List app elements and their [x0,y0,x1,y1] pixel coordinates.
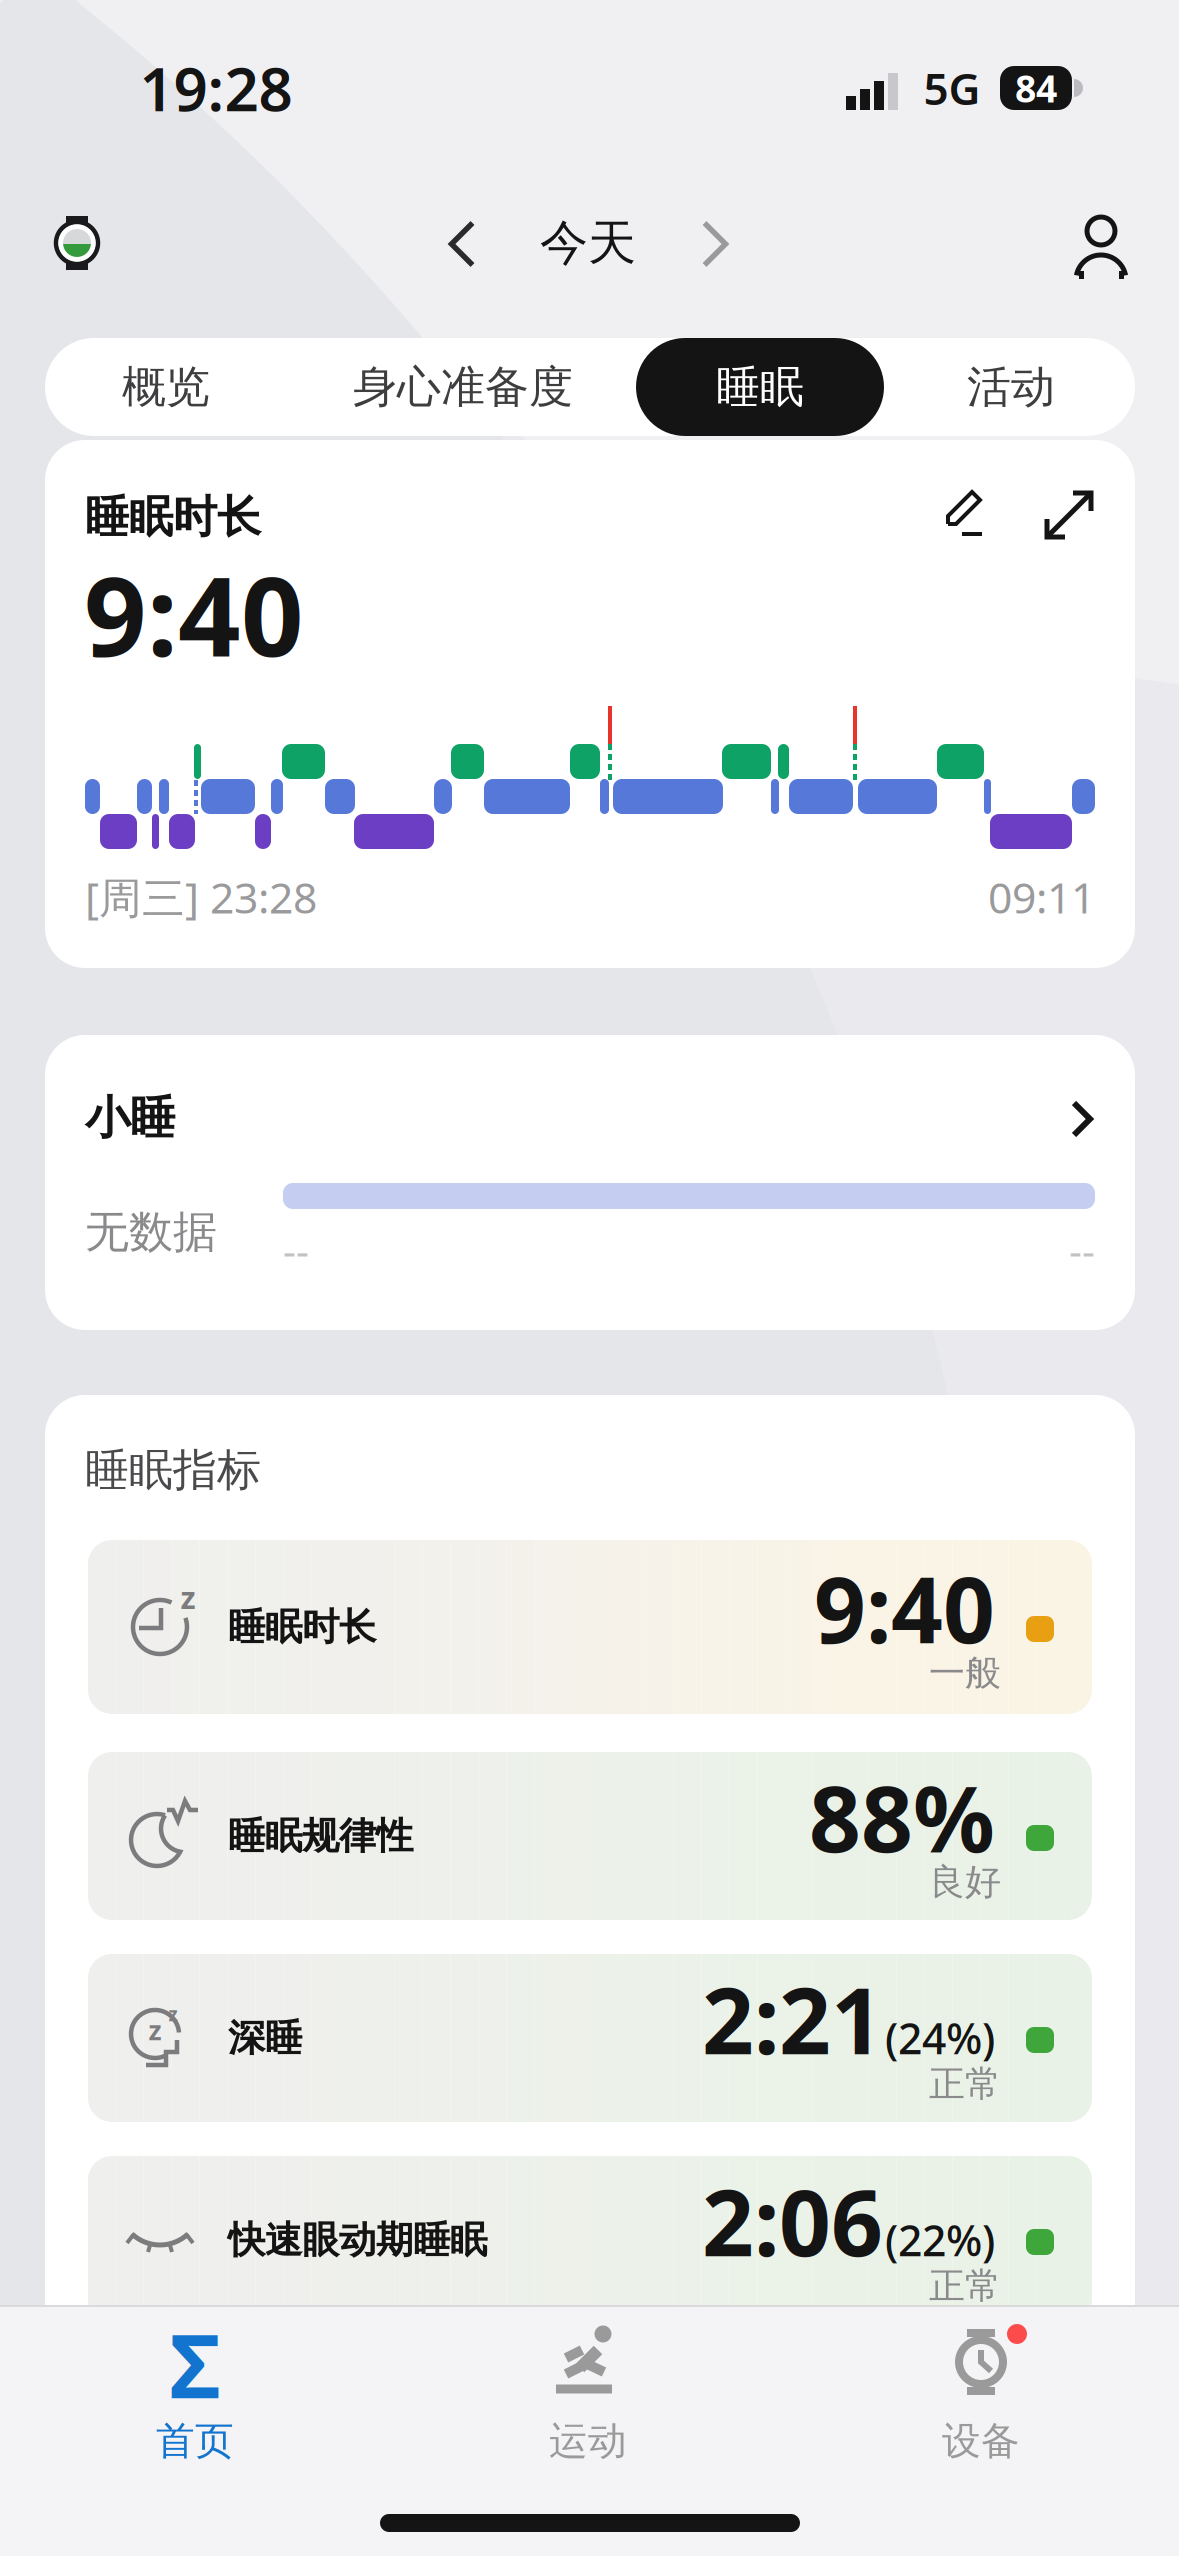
staticText: (22%) [885,2211,995,2268]
button[interactable]: Σ [85,2290,305,2460]
staticText: z [168,2002,177,2026]
button[interactable]: z [88,1540,1092,1714]
button[interactable] [46,210,108,276]
staticText: z [148,2012,161,2048]
button[interactable]: 身心准备度 [298,338,628,436]
staticText: (24%) [885,2009,995,2066]
button[interactable] [926,478,998,550]
staticText: [周三] 23:28 [85,869,317,925]
staticText: 概览 [122,360,210,414]
button[interactable]: 睡眠 [636,338,884,436]
button[interactable]: z [88,1954,1092,2122]
button[interactable]: 运动 [478,2290,698,2460]
staticText: 88% [809,1757,995,1877]
staticText: -- [1069,1223,1095,1276]
staticText: 5G [923,59,980,117]
staticText: 活动 [967,360,1055,414]
button[interactable]: 小睡 [45,1035,1135,1330]
staticText: 运动 [549,2417,627,2465]
button[interactable] [693,218,737,270]
staticText: 设备 [942,2417,1020,2465]
button[interactable]: 活动 [891,338,1131,436]
staticText: Σ [169,2306,220,2422]
staticText: 睡眠规律性 [228,1813,413,1859]
staticText: 今天 [540,213,636,272]
button[interactable]: 概览 [53,338,279,436]
staticText: 9:40 [814,1548,995,1668]
button[interactable]: 设备 [871,2290,1091,2460]
staticText: z [180,1577,195,1617]
staticText: 小睡 [85,1090,175,1146]
staticText: 2:21 [702,1959,883,2079]
staticText: 身心准备度 [353,360,573,414]
staticText: 快速眼动期睡眠 [228,2217,487,2263]
staticText: 首页 [156,2417,234,2465]
staticText: 良好 [929,1860,1001,1904]
button[interactable]: 快速眼动期睡眠 [88,2156,1092,2324]
staticText: 无数据 [85,1205,217,1259]
staticText: 睡眠时长 [85,490,261,544]
staticText: 09:11 [988,869,1095,925]
staticText: 正常 [929,2264,1001,2308]
staticText: 9:40 [84,541,304,687]
staticText: 84 [1015,63,1057,113]
staticText: 正常 [929,2062,1001,2106]
staticText: 深睡 [228,2015,302,2061]
staticText: 睡眠时长 [228,1604,376,1650]
staticText: 睡眠 [716,360,804,414]
staticText: 2:06 [702,2161,883,2281]
staticText: -- [283,1223,309,1276]
staticText: 睡眠指标 [85,1443,261,1497]
button[interactable] [440,218,484,270]
button[interactable] [1033,479,1105,551]
staticText: 19:28 [139,48,292,128]
button[interactable]: 睡眠规律性 [88,1752,1092,1920]
button[interactable] [1069,214,1133,282]
staticText: 一般 [929,1651,1001,1695]
